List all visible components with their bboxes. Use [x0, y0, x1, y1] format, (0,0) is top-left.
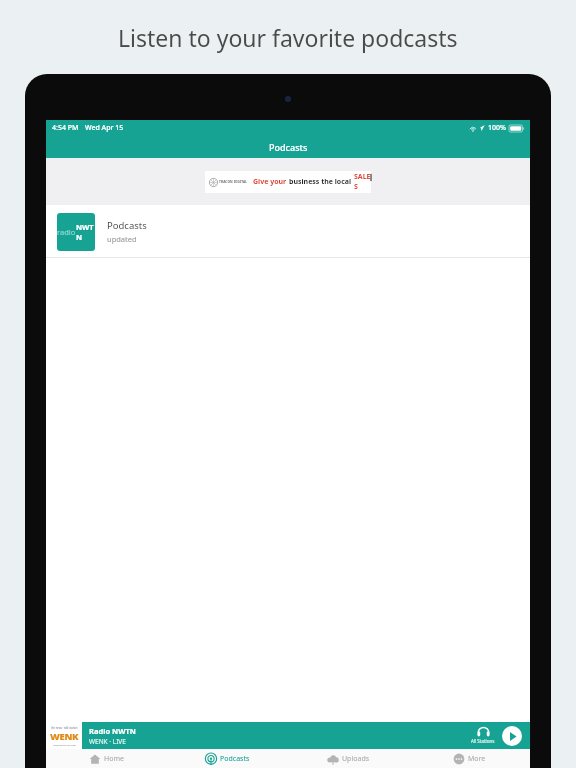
- staticText: the news · talk station: [51, 726, 78, 730]
- staticText: WENK · LIVE: [89, 737, 126, 746]
- staticText: Podcasts: [269, 141, 308, 153]
- button[interactable]: More: [409, 749, 530, 768]
- staticText: NWTN: [76, 222, 95, 242]
- staticText: WENK: [50, 730, 79, 743]
- staticText: 100%: [488, 123, 506, 133]
- button[interactable]: Home: [46, 749, 167, 768]
- staticText: Listen to your favorite podcasts: [118, 22, 458, 53]
- button[interactable]: Uploads: [288, 749, 409, 768]
- button[interactable]: TRACON DIGITAL: [205, 171, 371, 193]
- staticText: nothing but the best: [53, 743, 77, 746]
- staticText: business the local: [289, 177, 352, 187]
- button[interactable]: All Stations: [471, 722, 495, 749]
- button[interactable]: Play: [502, 726, 522, 746]
- staticText: Radio NWTN: [89, 726, 136, 736]
- staticText: More: [468, 754, 486, 764]
- staticText: radio: [57, 227, 76, 237]
- staticText: TRACON DIGITAL: [219, 180, 248, 184]
- staticText: Wed Apr 15: [85, 123, 124, 133]
- staticText: 4:54 PM: [52, 123, 79, 133]
- button[interactable]: Podcasts: [167, 749, 288, 768]
- staticText: updated: [107, 234, 137, 244]
- staticText: Uploads: [342, 754, 370, 764]
- button[interactable]: the news · talk station: [46, 722, 82, 749]
- staticText: Podcasts: [107, 219, 147, 232]
- staticText: Give your: [253, 177, 287, 187]
- staticText: All Stations: [471, 738, 495, 744]
- staticText: Home: [104, 754, 124, 764]
- button[interactable]: radio: [46, 205, 530, 258]
- staticText: Podcasts: [220, 754, 250, 764]
- staticText: SALES: [354, 172, 371, 192]
